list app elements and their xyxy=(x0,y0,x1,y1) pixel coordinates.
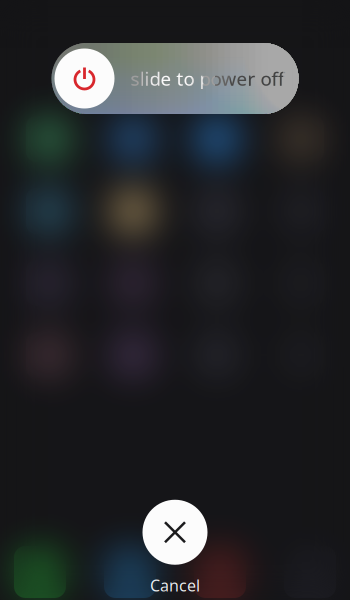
staticText: slide to power off xyxy=(130,66,284,91)
staticText: slide to power off xyxy=(130,66,284,91)
staticText: slide to power off xyxy=(130,66,284,91)
staticText: slide to power off xyxy=(130,66,284,91)
button[interactable]: slide to power off xyxy=(51,43,298,114)
staticText: slide to power off xyxy=(130,66,284,91)
staticText: slide to power off xyxy=(130,66,284,91)
staticText: slide to power off xyxy=(130,66,284,91)
staticText: slide to power off xyxy=(130,66,284,91)
staticText: slide to power off xyxy=(130,66,284,91)
button[interactable]: Cancel xyxy=(142,500,207,596)
staticText: slide to power off xyxy=(130,66,284,91)
staticText: Cancel xyxy=(150,575,200,596)
staticText: slide to power off xyxy=(130,66,284,91)
